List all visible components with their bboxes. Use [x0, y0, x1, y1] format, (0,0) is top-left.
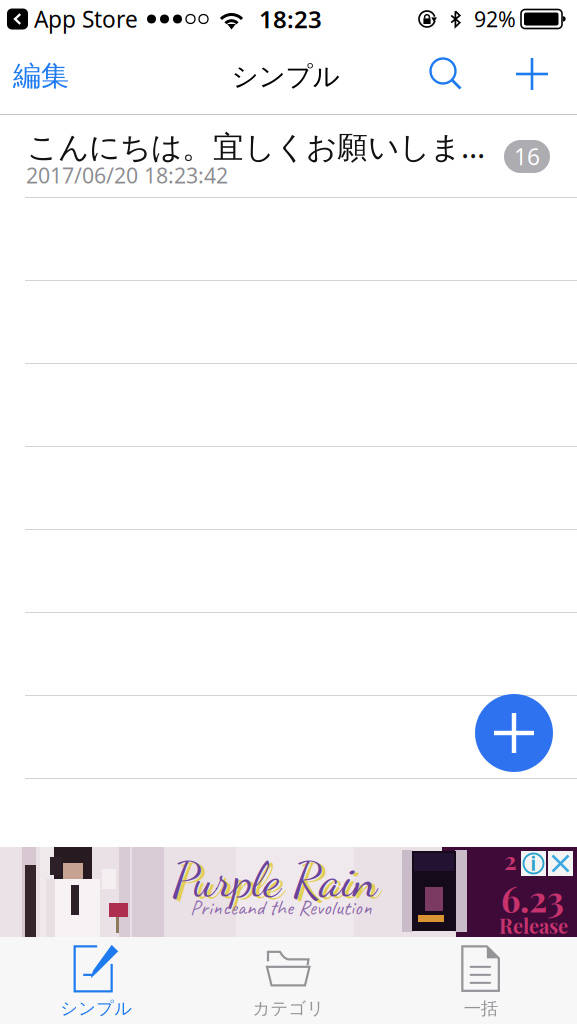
button[interactable]: シンプル: [0, 937, 192, 1024]
staticText: シンプル: [60, 998, 132, 1019]
staticText: Princeand the Revolution: [190, 894, 372, 921]
button[interactable]: こんにちは。宜しくお願いしま…: [0, 115, 577, 197]
button[interactable]: 空のメモ: [0, 197, 577, 280]
staticText: 2: [504, 844, 517, 876]
button[interactable]: 検索: [417, 36, 475, 112]
button[interactable]: 広告について: [521, 851, 546, 876]
button[interactable]: 新規メモを追加: [475, 694, 553, 772]
staticText: 編集: [13, 59, 69, 93]
staticText: こんにちは。宜しくお願いしま…: [27, 126, 485, 167]
staticText: 16: [514, 141, 540, 171]
staticText: App Store: [34, 4, 138, 34]
button[interactable]: 新規作成: [503, 36, 561, 112]
button[interactable]: 空のメモ: [0, 529, 577, 612]
button[interactable]: 空のメモ: [0, 280, 577, 363]
button[interactable]: 一括: [385, 937, 577, 1024]
staticText: 一括: [464, 998, 498, 1019]
staticText: 6.23: [501, 875, 564, 921]
staticText: Purple Rain: [172, 850, 377, 909]
button[interactable]: 空のメモ: [0, 695, 577, 778]
staticText: 18:23: [259, 3, 322, 35]
staticText: 2017/06/20 18:23:42: [26, 161, 228, 189]
staticText: i: [530, 851, 536, 876]
button[interactable]: 空のメモ: [0, 363, 577, 446]
button[interactable]: カテゴリ: [192, 937, 385, 1024]
staticText: 92%: [474, 5, 516, 33]
button[interactable]: 編集: [0, 38, 83, 114]
staticText: Release: [499, 912, 568, 939]
staticText: カテゴリ: [252, 998, 324, 1019]
button[interactable]: 空のメモ: [0, 446, 577, 529]
button[interactable]: 広告を閉じる: [548, 851, 573, 876]
staticText: シンプル: [231, 60, 339, 93]
staticText: Purple Rain: [176, 852, 381, 911]
button[interactable]: 空のメモ: [0, 612, 577, 695]
